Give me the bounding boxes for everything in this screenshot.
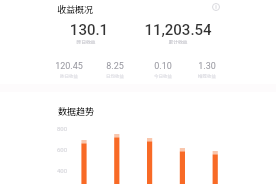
staticText: 数据趋势 [58, 105, 95, 118]
staticText: 累计收益 [118, 38, 238, 45]
button[interactable]: 数据趋势 [51, 101, 102, 122]
staticText: 400 [57, 167, 68, 174]
staticText: 收益概况 [57, 3, 94, 16]
button[interactable]: 120.45 [45, 61, 93, 80]
staticText: 推荐收益 [198, 73, 216, 80]
staticText: 1.30 [198, 61, 216, 72]
staticText: 今日收益 [154, 73, 172, 80]
button[interactable]: 11,203.54 [118, 21, 238, 47]
staticText: 日均收益 [106, 73, 124, 80]
staticText: 昨日收益 [60, 73, 78, 80]
staticText: 120.45 [55, 61, 83, 72]
staticText: 600 [57, 146, 68, 153]
button[interactable]: 0.10 [139, 61, 187, 80]
button[interactable]: 收益概况 [50, 0, 101, 20]
staticText: 130.1 [29, 21, 149, 39]
staticText: 0.10 [154, 61, 172, 72]
staticText: 8.25 [106, 61, 124, 72]
button[interactable]: 说明 [209, 0, 223, 14]
button[interactable]: 130.1 [29, 21, 149, 47]
staticText: 800 [57, 125, 68, 132]
staticText: 昨日收益 [26, 38, 146, 45]
button[interactable]: 8.25 [91, 61, 139, 80]
button[interactable]: 1.30 [183, 61, 231, 80]
staticText: 11,203.54 [118, 21, 238, 39]
